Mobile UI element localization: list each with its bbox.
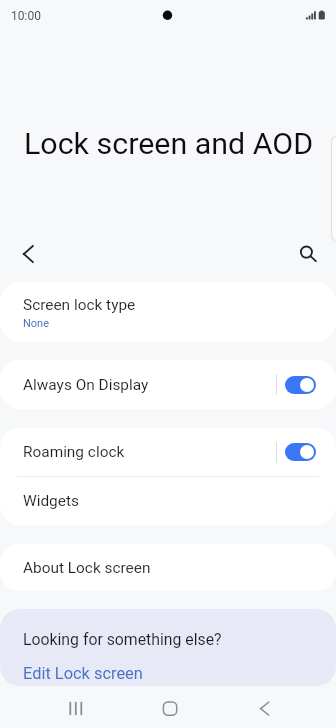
staticText: None [23, 317, 50, 330]
button[interactable]: Recent apps [27, 686, 121, 728]
button[interactable]: Screen lock type [0, 282, 336, 342]
staticText: Always On Display [23, 376, 149, 394]
button[interactable]: Widgets [0, 477, 336, 525]
staticText: Lock screen and AOD [24, 126, 314, 162]
staticText: Screen lock type [23, 296, 136, 314]
button[interactable]: Back [215, 686, 309, 728]
staticText: 10:00 [11, 9, 41, 23]
button[interactable] [285, 376, 316, 394]
button[interactable] [285, 443, 316, 461]
staticText: Roaming clock [23, 443, 125, 461]
button[interactable]: Home [121, 686, 215, 728]
staticText: Looking for something else? [23, 630, 222, 649]
staticText: Widgets [23, 492, 79, 510]
button[interactable]: Roaming clock [0, 428, 336, 476]
button[interactable]: Navigate up [5, 230, 49, 274]
button[interactable]: Search [284, 230, 328, 274]
staticText: About Lock screen [23, 559, 151, 577]
button[interactable]: Edit Lock screen [23, 664, 143, 683]
button[interactable]: Always On Display [0, 360, 336, 409]
button[interactable]: About Lock screen [0, 544, 336, 591]
